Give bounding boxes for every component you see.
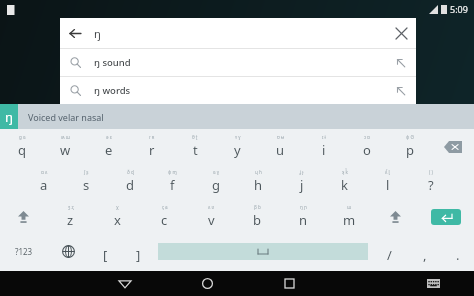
staticText: r: [149, 141, 155, 159]
button[interactable]: ( ): [409, 164, 452, 199]
button[interactable]: ʏ ɣ: [216, 129, 259, 164]
button[interactable]: ŋ: [0, 104, 18, 129]
button[interactable]: ŋ sound: [60, 49, 416, 76]
staticText: ŋ sound: [94, 56, 131, 69]
button[interactable]: Space: [155, 234, 371, 269]
staticText: ʃ ʂ: [84, 169, 89, 175]
staticText: f: [170, 176, 175, 194]
button[interactable]: ɸ ʘ: [388, 129, 431, 164]
button[interactable]: β ɓ: [234, 199, 280, 234]
staticText: Voiced velar nasal: [28, 111, 104, 123]
staticText: a: [40, 176, 48, 194]
button[interactable]: ʃ ʂ: [65, 164, 108, 199]
staticText: p: [406, 141, 414, 159]
staticText: w: [60, 141, 71, 159]
staticText: ɾ ʀ: [149, 134, 155, 140]
staticText: s: [83, 176, 90, 194]
button[interactable]: ŋ ɲ: [280, 199, 326, 234]
button[interactable]: Enter: [418, 199, 474, 234]
staticText: ə ɛ: [106, 134, 112, 140]
button[interactable]: ɢ ɣ: [194, 164, 237, 199]
staticText: ]: [136, 246, 141, 264]
staticText: ʌ ʋ: [208, 204, 215, 210]
staticText: q: [18, 141, 26, 159]
button[interactable]: ʌ ʋ: [188, 199, 234, 234]
staticText: ɑ ʌ: [41, 169, 48, 175]
button[interactable]: Insert suggestion: [386, 77, 416, 104]
button[interactable]: Hide keyboard: [392, 271, 474, 296]
button[interactable]: ð ɖ: [108, 164, 151, 199]
button[interactable]: ɑ ʌ: [22, 164, 65, 199]
staticText: ʎ ɭ: [385, 169, 390, 175]
button[interactable]: ,: [408, 234, 441, 269]
staticText: ,: [423, 246, 427, 264]
button[interactable]: ɸ ɱ: [151, 164, 194, 199]
staticText: ʒ ʐ: [68, 204, 74, 210]
button[interactable]: /: [371, 234, 408, 269]
button[interactable]: ɥ ɦ: [237, 164, 280, 199]
staticText: ʏ ɣ: [235, 134, 241, 140]
staticText: ŋ words: [94, 84, 131, 97]
button[interactable]: Back: [60, 18, 416, 48]
staticText: .: [456, 246, 460, 264]
staticText: t: [193, 141, 198, 159]
button[interactable]: Shift: [0, 199, 47, 234]
button[interactable]: ʞ ǩ: [323, 164, 366, 199]
button[interactable]: ʍ ɯ: [44, 129, 87, 164]
button[interactable]: ɯ: [326, 199, 372, 234]
staticText: k: [341, 176, 348, 194]
button[interactable]: ɾ ʀ: [130, 129, 173, 164]
staticText: ɸ ʘ: [406, 134, 414, 140]
staticText: i: [322, 141, 326, 159]
button[interactable]: Back: [83, 271, 166, 296]
staticText: n: [299, 211, 308, 229]
staticText: β ɓ: [254, 204, 261, 210]
button[interactable]: ʎ ɭ: [366, 164, 409, 199]
button[interactable]: ŋ words: [60, 77, 416, 104]
button[interactable]: χ: [94, 199, 141, 234]
button[interactable]: ɡ ɢ: [0, 129, 44, 164]
staticText: ɔ ɒ: [364, 134, 371, 140]
button[interactable]: ç ɕ: [141, 199, 188, 234]
button[interactable]: ə ɛ: [87, 129, 130, 164]
staticText: l: [386, 176, 390, 194]
staticText: χ: [116, 204, 119, 210]
button[interactable]: ʝ ɟ: [280, 164, 323, 199]
button[interactable]: ]: [122, 234, 155, 269]
button[interactable]: Insert suggestion: [386, 49, 416, 76]
staticText: ŋ: [5, 108, 14, 126]
button[interactable]: Shift: [372, 199, 418, 234]
button[interactable]: ʒ ʐ: [47, 199, 94, 234]
staticText: d: [126, 176, 134, 194]
staticText: /: [387, 246, 392, 264]
staticText: ( ): [429, 169, 433, 175]
button[interactable]: Clear: [386, 18, 416, 48]
staticText: ʍ ɯ: [61, 134, 70, 140]
staticText: ŋ ɲ: [300, 204, 307, 210]
staticText: ŋ: [94, 26, 101, 41]
staticText: y: [234, 141, 241, 159]
button[interactable]: Change language: [47, 234, 89, 269]
staticText: m: [343, 211, 356, 229]
staticText: θ ʈ: [192, 134, 198, 140]
staticText: e: [105, 141, 113, 159]
button[interactable]: Backspace: [431, 129, 474, 164]
button[interactable]: Back: [60, 18, 90, 48]
staticText: 5:09: [450, 3, 468, 15]
button[interactable]: ɔ ɒ: [345, 129, 388, 164]
button[interactable]: Home: [166, 271, 248, 296]
staticText: b: [253, 211, 261, 229]
staticText: u: [276, 141, 285, 159]
staticText: h: [254, 176, 263, 194]
button[interactable]: ɪ ɨ: [302, 129, 345, 164]
button[interactable]: ?123: [0, 234, 47, 269]
button[interactable]: Voiced velar nasal: [18, 104, 474, 129]
button[interactable]: [: [89, 234, 122, 269]
button[interactable]: θ ʈ: [173, 129, 216, 164]
button[interactable]: ʊ ʉ: [259, 129, 302, 164]
button[interactable]: .: [441, 234, 474, 269]
staticText: z: [67, 211, 74, 229]
staticText: ɥ ɦ: [255, 169, 262, 175]
staticText: j: [300, 176, 304, 194]
button[interactable]: Recent apps: [248, 271, 330, 296]
